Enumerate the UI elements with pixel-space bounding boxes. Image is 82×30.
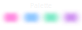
staticText: Palette	[30, 1, 52, 10]
